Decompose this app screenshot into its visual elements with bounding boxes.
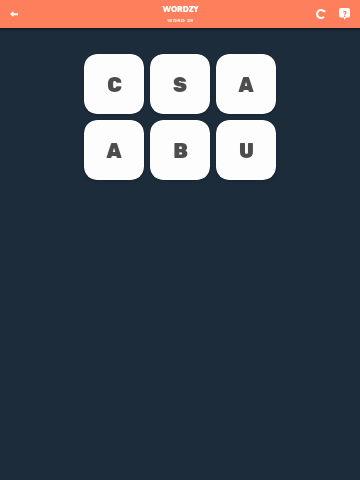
staticText: U (239, 139, 254, 163)
button[interactable]: U (216, 120, 276, 180)
staticText: B (173, 139, 188, 163)
staticText: A (106, 139, 122, 163)
staticText: ? (343, 9, 347, 17)
button[interactable]: Help (332, 2, 356, 26)
staticText: WORDZY (162, 4, 199, 14)
staticText: S (173, 73, 187, 97)
button[interactable]: A (216, 54, 276, 114)
button[interactable]: B (150, 120, 210, 180)
button[interactable]: S (150, 54, 210, 114)
button[interactable]: C (84, 54, 144, 114)
staticText: WORD 28 (167, 17, 194, 23)
button[interactable]: Restart (309, 2, 333, 26)
staticText: C (107, 73, 122, 97)
button[interactable]: A (84, 120, 144, 180)
staticText: A (238, 73, 254, 97)
button[interactable]: Back (0, 0, 28, 28)
